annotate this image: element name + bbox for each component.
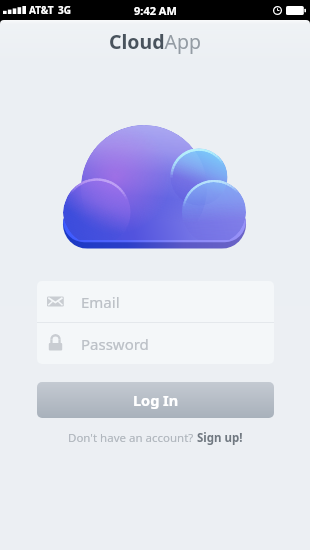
button[interactable]: Password [37, 323, 274, 364]
staticText: 3G [58, 3, 71, 17]
button[interactable]: Email [37, 281, 274, 322]
other: Signal [3, 6, 26, 14]
staticText: Email [81, 292, 120, 312]
button[interactable]: Log In [37, 382, 274, 418]
staticText: Log In [133, 390, 179, 410]
button[interactable]: Don't have an account? [68, 430, 243, 446]
staticText: Sign up! [197, 430, 243, 446]
staticText: Password [81, 334, 149, 354]
staticText: CloudApp [109, 28, 201, 55]
staticText: AT&T [29, 3, 54, 17]
other: Battery [286, 6, 306, 15]
other: Alarm [273, 6, 282, 15]
staticText: 9:42 AM [134, 3, 177, 18]
staticText: Don't have an account? [68, 430, 197, 446]
